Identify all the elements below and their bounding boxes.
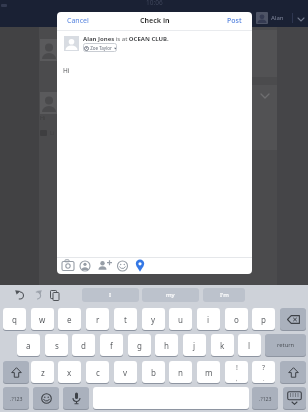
button[interactable] xyxy=(114,258,133,273)
staticText: x xyxy=(67,367,72,378)
staticText: , xyxy=(236,375,238,382)
button[interactable]: g xyxy=(128,334,151,356)
staticText: Post xyxy=(227,16,242,26)
button[interactable]: z xyxy=(31,361,54,383)
button[interactable] xyxy=(3,361,29,383)
button[interactable]: .?123 xyxy=(3,387,29,409)
staticText: s xyxy=(55,340,59,351)
staticText: ? xyxy=(262,363,266,373)
staticText: .?123 xyxy=(10,395,23,402)
button[interactable]: s xyxy=(45,334,68,356)
staticText: . xyxy=(263,375,265,382)
staticText: my xyxy=(166,291,175,299)
staticText: a xyxy=(26,340,31,351)
staticText: p xyxy=(261,314,266,325)
button[interactable]: e xyxy=(58,308,81,330)
staticText: m xyxy=(205,367,213,378)
button[interactable] xyxy=(76,258,95,273)
staticText: Alan xyxy=(271,14,284,22)
button[interactable]: d xyxy=(72,334,95,356)
button[interactable]: Cancel xyxy=(57,12,117,30)
staticText: n xyxy=(178,367,183,378)
button[interactable]: ? xyxy=(252,361,275,383)
staticText: q xyxy=(12,314,17,325)
staticText: .?123 xyxy=(259,395,272,402)
staticText: g xyxy=(137,340,142,351)
staticText: f xyxy=(110,340,113,351)
staticText: j xyxy=(193,340,196,351)
staticText: Cancel xyxy=(67,16,89,26)
button[interactable]: Zoe Taylor xyxy=(83,43,117,52)
staticText: return xyxy=(277,341,295,349)
button[interactable]: my xyxy=(142,288,199,302)
staticText: v xyxy=(123,367,128,378)
button[interactable]: u xyxy=(169,308,192,330)
button[interactable]: l xyxy=(238,334,261,356)
button[interactable]: a xyxy=(17,334,40,356)
staticText: c xyxy=(96,367,100,378)
staticText: w xyxy=(39,314,46,325)
button[interactable] xyxy=(280,308,306,330)
button[interactable]: I'm xyxy=(203,288,245,302)
staticText: r xyxy=(96,314,100,325)
staticText: o xyxy=(234,314,239,325)
button[interactable]: p xyxy=(252,308,275,330)
button[interactable]: k xyxy=(211,334,234,356)
staticText: z xyxy=(41,367,45,378)
button[interactable]: .?123 xyxy=(252,387,278,409)
staticText: I'm xyxy=(220,291,229,299)
staticText: i xyxy=(207,314,210,325)
button[interactable]: j xyxy=(183,334,206,356)
button[interactable]: t xyxy=(114,308,137,330)
staticText: b xyxy=(151,367,156,378)
button[interactable]: Post xyxy=(192,12,252,30)
button[interactable]: h xyxy=(155,334,178,356)
button[interactable]: w xyxy=(31,308,54,330)
staticText: 10:06 xyxy=(146,0,163,7)
staticText: u xyxy=(178,314,183,325)
button[interactable]: n xyxy=(169,361,192,383)
button[interactable] xyxy=(63,387,89,409)
button[interactable]: y xyxy=(142,308,165,330)
staticText: Alan Jones is at OCEAN CLUB. xyxy=(83,35,169,43)
button[interactable] xyxy=(280,361,306,383)
staticText: ! xyxy=(236,363,238,373)
button[interactable]: o xyxy=(225,308,248,330)
button[interactable]: v xyxy=(114,361,137,383)
staticText: Check in xyxy=(140,16,170,26)
staticText: h xyxy=(164,340,169,351)
button[interactable]: return xyxy=(265,334,306,356)
button[interactable]: x xyxy=(58,361,81,383)
staticText: Hi xyxy=(40,114,46,121)
staticText: k xyxy=(220,340,225,351)
staticText: d xyxy=(81,340,86,351)
staticText: Zoe Taylor xyxy=(89,45,114,51)
staticText: Hi xyxy=(63,66,70,75)
button[interactable]: ! xyxy=(225,361,248,383)
staticText: I xyxy=(109,291,112,299)
button[interactable] xyxy=(33,387,59,409)
button[interactable]: i xyxy=(197,308,220,330)
button[interactable]: b xyxy=(142,361,165,383)
button[interactable]: q xyxy=(3,308,26,330)
button[interactable] xyxy=(95,258,114,273)
button[interactable]: c xyxy=(86,361,109,383)
staticText: e xyxy=(67,314,72,325)
button[interactable]: I xyxy=(82,288,139,302)
staticText: t xyxy=(124,314,127,325)
button[interactable] xyxy=(283,387,306,409)
button[interactable]: r xyxy=(86,308,109,330)
button[interactable]: m xyxy=(197,361,220,383)
staticText: l xyxy=(248,340,251,351)
button[interactable] xyxy=(133,258,152,273)
button[interactable] xyxy=(57,258,76,273)
staticText: y xyxy=(151,314,156,325)
button[interactable]: f xyxy=(100,334,123,356)
